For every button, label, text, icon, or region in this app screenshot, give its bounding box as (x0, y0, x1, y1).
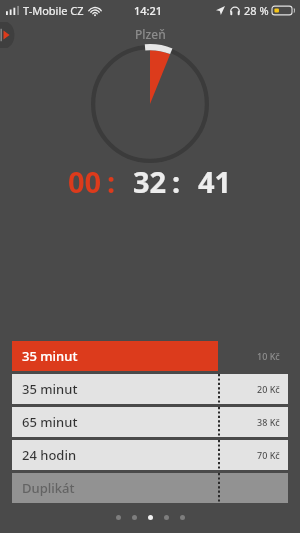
button[interactable]: 35 minut (12, 374, 288, 404)
staticText: 70 Kč (257, 449, 280, 461)
staticText: 65 minut (22, 413, 78, 431)
button[interactable]: 35 minut (12, 341, 288, 371)
staticText: 14:21 (134, 3, 163, 18)
staticText: 32 (133, 162, 167, 201)
staticText: Plzeň (135, 26, 166, 42)
staticText: 35 minut (22, 347, 78, 365)
staticText: 35 minut (22, 380, 78, 398)
staticText: 24 hodin (22, 446, 77, 464)
staticText: 41 (198, 162, 232, 201)
staticText: 38 Kč (257, 416, 280, 428)
staticText: 20 Kč (257, 383, 280, 395)
staticText: T-Mobile CZ (23, 3, 84, 18)
button[interactable]: 24 hodin (12, 440, 288, 470)
staticText: Duplikát (22, 479, 75, 497)
button[interactable]: 65 minut (12, 407, 288, 437)
button[interactable]: Open side panel (0, 22, 16, 48)
staticText: 00 (68, 162, 102, 201)
button[interactable]: Duplikát (12, 473, 288, 503)
staticText: : (107, 162, 116, 201)
staticText: 28 % (244, 3, 269, 18)
staticText: : (172, 162, 181, 201)
staticText: 10 Kč (257, 350, 280, 362)
